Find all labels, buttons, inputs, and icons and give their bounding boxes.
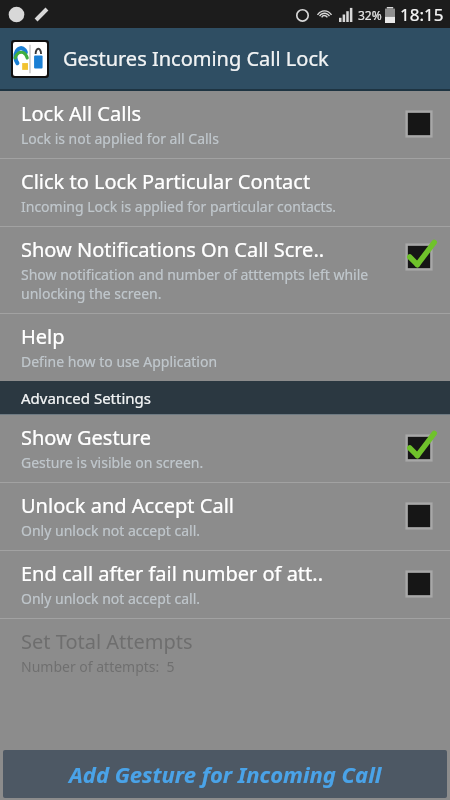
button[interactable]: Show Gesture [0,415,450,482]
staticText: Set Total Attempts [21,628,193,655]
staticText: Incoming Lock is applied for particular … [21,197,337,216]
staticText: Show Notifications On Call Scre.. [21,236,325,263]
button[interactable]: Lock All Calls [0,91,450,158]
staticText: Only unlock not accept call. [21,521,201,540]
staticText: Define how to use Application [21,352,218,371]
staticText: Number of attempts: 5 [21,657,175,676]
button[interactable]: Unlock and Accept Call [0,483,450,550]
staticText: End call after fail number of att.. [21,560,324,587]
button[interactable]: Show Notifications On Call Scre.. [0,227,450,313]
staticText: Show Gesture [21,424,152,451]
staticText: 32% [358,7,382,23]
staticText: Lock All Calls [21,100,142,127]
staticText: Help [21,323,65,350]
button: Set Total Attempts [0,619,450,686]
button[interactable]: End call after fail number of att.. [0,551,450,618]
staticText: Only unlock not accept call. [21,589,201,608]
button[interactable]: Gestures Incoming Call Lock [0,28,450,89]
staticText: Gesture is visible on screen. [21,453,204,472]
button[interactable]: Click to Lock Particular Contact [0,159,450,226]
staticText: 18:15 [400,3,444,26]
button[interactable]: Help [0,314,450,381]
staticText: Add Gesture for Incoming Call [69,759,382,789]
staticText: Unlock and Accept Call [21,492,234,519]
staticText: Advanced Settings [21,388,151,408]
staticText: Show notification and number of atttempt… [21,265,396,303]
staticText: Click to Lock Particular Contact [21,168,311,195]
staticText: Gestures Incoming Call Lock [63,45,329,72]
button[interactable]: Add Gesture for Incoming Call [3,750,447,798]
staticText: Lock is not applied for all Calls [21,129,219,148]
